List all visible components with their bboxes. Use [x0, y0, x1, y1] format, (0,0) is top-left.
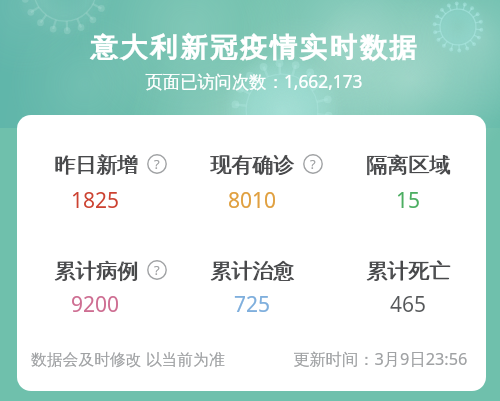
button[interactable]: 说明 [147, 260, 167, 280]
staticText: 9200 [71, 290, 120, 319]
staticText: 累计死亡 [366, 258, 450, 284]
staticText: 725 [234, 290, 271, 319]
button[interactable]: 累计病例 [17, 258, 174, 320]
staticText: 15 [396, 186, 421, 215]
button[interactable]: 说明 [303, 154, 323, 174]
staticText: 累计治愈 [210, 258, 294, 284]
staticText: 累计病例 [55, 258, 139, 284]
staticText: 465 [390, 290, 427, 319]
staticText: 昨日新增 [54, 152, 138, 178]
staticText: 隔离区域 [367, 152, 451, 178]
staticText: 累计病例 [54, 258, 138, 284]
staticText: 意大利新冠疫情实时数据 [5, 31, 500, 65]
staticText: 现有确诊 [211, 152, 295, 178]
staticText: 8010 [228, 186, 277, 215]
staticText: ? [154, 155, 160, 173]
staticText: ? [310, 155, 316, 173]
button[interactable]: 现有确诊 [174, 152, 330, 214]
staticText: 现有确诊 [210, 152, 294, 178]
staticText: 数据会及时修改 以当前为准 [31, 348, 225, 370]
staticText: ? [154, 261, 160, 279]
button[interactable]: 昨日新增 [17, 152, 174, 214]
staticText: 1825 [71, 186, 120, 215]
staticText: 昨日新增 [55, 152, 139, 178]
button[interactable]: 累计治愈 [174, 258, 330, 320]
staticText: 页面已访问次数：1,662,173 [4, 70, 500, 94]
button[interactable]: 隔离区域 [330, 152, 486, 214]
staticText: 累计死亡 [367, 258, 451, 284]
button[interactable]: 累计死亡 [330, 258, 486, 320]
staticText: 更新时间：3月9日23:56 [293, 348, 468, 370]
staticText: 累计治愈 [211, 258, 295, 284]
staticText: 隔离区域 [366, 152, 450, 178]
button[interactable]: 说明 [147, 154, 167, 174]
